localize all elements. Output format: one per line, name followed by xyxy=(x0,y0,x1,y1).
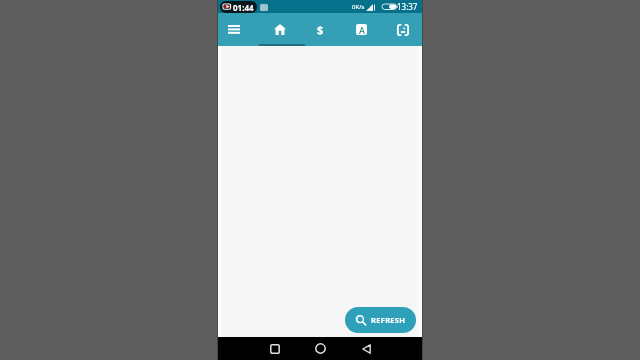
staticText: 13:37 xyxy=(397,1,418,12)
button[interactable] xyxy=(382,13,423,46)
button[interactable] xyxy=(268,342,282,355)
button[interactable]: $ xyxy=(300,13,341,46)
button[interactable] xyxy=(260,13,300,46)
button[interactable] xyxy=(359,342,373,355)
button[interactable] xyxy=(222,19,246,39)
button[interactable] xyxy=(313,342,327,355)
staticText: A xyxy=(359,24,365,35)
button[interactable]: REFRESH xyxy=(345,307,416,333)
staticText: $ xyxy=(317,22,324,37)
staticText: 0K/s xyxy=(352,3,365,11)
button[interactable]: A xyxy=(341,13,382,46)
staticText: 01:44 xyxy=(233,2,254,13)
staticText: REFRESH xyxy=(371,315,406,325)
